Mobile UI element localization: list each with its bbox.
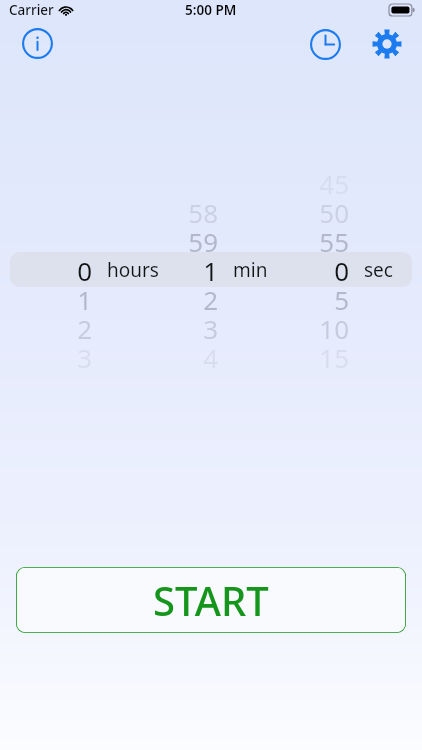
- staticText: 58: [188, 195, 218, 229]
- staticText: 15: [319, 340, 349, 374]
- button[interactable]: History: [303, 22, 347, 66]
- button[interactable]: Settings: [365, 22, 409, 66]
- staticText: 3: [203, 311, 218, 345]
- staticText: 3: [77, 340, 92, 374]
- staticText: 0: [334, 253, 349, 287]
- staticText: 5: [334, 282, 349, 316]
- staticText: 50: [319, 195, 349, 229]
- staticText: START: [153, 573, 269, 627]
- button[interactable]: START: [16, 567, 406, 633]
- staticText: 0: [77, 253, 92, 287]
- staticText: 45: [319, 166, 349, 200]
- staticText: hours: [107, 257, 159, 283]
- staticText: 4: [203, 340, 218, 374]
- staticText: 55: [319, 224, 349, 258]
- staticText: min: [233, 257, 268, 283]
- staticText: 5:00 PM: [185, 1, 237, 19]
- staticText: 2: [77, 311, 92, 345]
- staticText: 1: [77, 282, 92, 316]
- staticText: 2: [203, 282, 218, 316]
- button[interactable]: Duration picker: [8, 165, 414, 360]
- staticText: 1: [203, 253, 218, 287]
- staticText: 59: [188, 224, 218, 258]
- staticText: Carrier: [9, 1, 54, 19]
- staticText: 10: [319, 311, 349, 345]
- staticText: sec: [364, 257, 393, 283]
- button[interactable]: Info: [15, 21, 59, 65]
